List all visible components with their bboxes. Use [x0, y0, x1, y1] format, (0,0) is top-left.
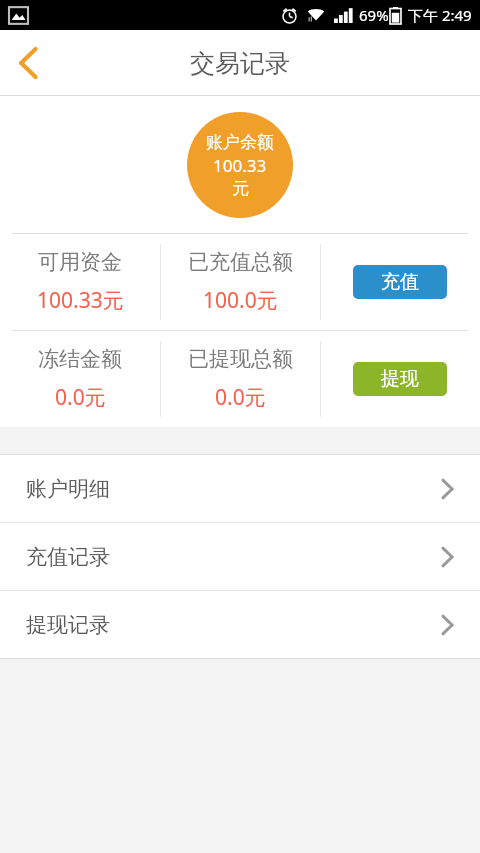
staticText: 0.0元: [215, 383, 266, 412]
staticText: 已充值总额: [188, 249, 293, 275]
staticText: 下午 2:49: [408, 5, 472, 25]
staticText: 账户明细: [26, 476, 110, 502]
staticText: 100.33: [213, 154, 267, 177]
staticText: 已提现总额: [188, 346, 293, 372]
button[interactable]: 账户明细: [0, 455, 480, 522]
staticText: 充值记录: [26, 544, 110, 570]
button[interactable]: 提现记录: [0, 591, 480, 658]
staticText: 可用资金: [38, 249, 122, 275]
staticText: 元: [232, 178, 249, 199]
staticText: 100.0元: [203, 286, 278, 315]
staticText: 充值: [381, 270, 419, 294]
staticText: 冻结金额: [38, 346, 122, 372]
staticText: 账户余额: [206, 132, 274, 153]
button[interactable]: 账户余额: [187, 112, 293, 218]
staticText: 交易记录: [190, 48, 290, 79]
staticText: 提现记录: [26, 612, 110, 638]
staticText: 提现: [381, 367, 419, 391]
button[interactable]: Back: [0, 35, 56, 91]
button[interactable]: 充值: [353, 265, 447, 299]
staticText: 0.0元: [55, 383, 106, 412]
button[interactable]: 提现: [353, 362, 447, 396]
button[interactable]: 充值记录: [0, 523, 480, 590]
staticText: 69%: [359, 5, 389, 25]
staticText: 100.33元: [37, 286, 124, 315]
